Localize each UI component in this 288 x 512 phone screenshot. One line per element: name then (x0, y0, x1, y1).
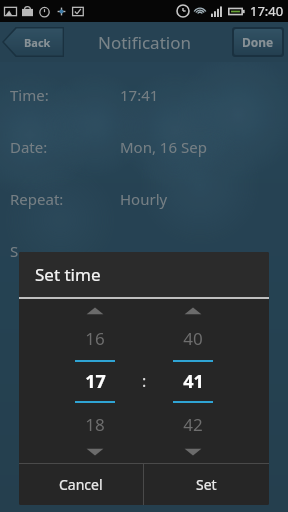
button[interactable]: Set (144, 464, 269, 505)
button[interactable]: S (0, 240, 288, 262)
other: Increment (84, 305, 106, 317)
staticText: 16 (85, 327, 105, 350)
staticText: Repeat: (10, 189, 64, 209)
button[interactable]: Done (234, 29, 282, 55)
other: Increment (182, 305, 204, 317)
staticText: Notification (98, 31, 191, 54)
staticText: 17:41 (120, 85, 159, 105)
button[interactable]: Time: (0, 84, 288, 106)
button[interactable]: Date: (0, 136, 288, 158)
other: Decrement (84, 446, 106, 458)
staticText: 40 (183, 327, 203, 350)
button[interactable]: Cancel (19, 464, 143, 505)
staticText: Back (24, 35, 51, 50)
staticText: 42 (183, 413, 203, 436)
staticText: 17 (85, 369, 106, 394)
staticText: 18 (85, 413, 105, 436)
staticText: Hourly (120, 189, 168, 209)
staticText: Mon, 16 Sep (120, 137, 207, 157)
staticText: S (10, 241, 19, 261)
other: Decrement (182, 446, 204, 458)
staticText: Time: (10, 85, 49, 105)
staticText: Set time (35, 263, 101, 286)
staticText: Date: (10, 137, 48, 157)
staticText: 17:40 (250, 2, 284, 20)
staticText: Set (196, 475, 217, 494)
staticText: Cancel (59, 475, 103, 494)
staticText: Done (242, 34, 274, 50)
button[interactable]: Increment (157, 305, 229, 458)
button[interactable]: Back (2, 27, 64, 57)
button[interactable]: Increment (59, 305, 131, 458)
staticText: 41 (183, 369, 204, 394)
button[interactable]: Repeat: (0, 188, 288, 210)
staticText: : (142, 370, 147, 392)
